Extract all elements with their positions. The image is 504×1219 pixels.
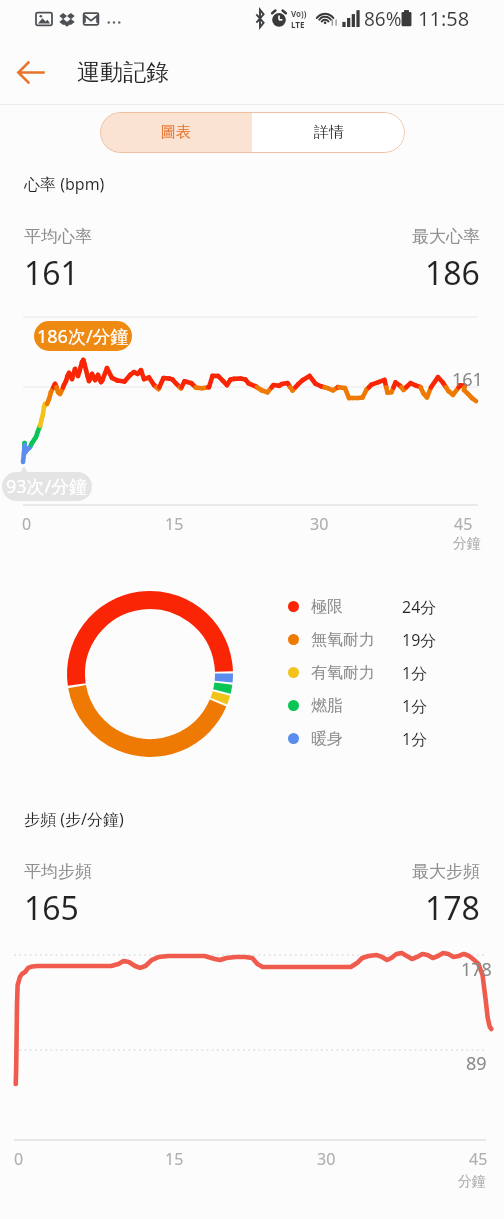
staticText: 燃脂	[311, 696, 402, 716]
staticText: 30	[317, 1148, 336, 1170]
button[interactable]: 燃脂	[288, 689, 488, 722]
staticText: 186次/分鐘	[37, 324, 129, 349]
staticText: 178	[425, 886, 480, 930]
staticText: 無氧耐力	[311, 630, 402, 650]
staticText: 步頻 (步/分鐘)	[24, 808, 124, 830]
staticText: 運動記錄	[77, 58, 169, 87]
button[interactable]: Back	[0, 42, 60, 102]
staticText: 最大步頻	[412, 861, 480, 882]
staticText: 11:58	[418, 5, 470, 32]
staticText: 165	[24, 886, 79, 930]
staticText: 15	[165, 513, 184, 535]
staticText: 極限	[311, 597, 402, 617]
staticText: 161	[452, 367, 483, 392]
staticText: 15	[165, 1148, 184, 1170]
staticText: 45	[454, 513, 473, 535]
staticText: 心率 (bpm)	[24, 173, 105, 195]
button[interactable]: 無氧耐力	[288, 623, 488, 656]
staticText: 有氧耐力	[311, 663, 402, 683]
staticText: 89	[466, 1051, 487, 1076]
staticText: 24分	[402, 596, 437, 618]
staticText: 186	[425, 251, 480, 295]
staticText: 178	[461, 957, 492, 982]
staticText: LTE	[291, 19, 305, 30]
staticText: 0	[22, 513, 32, 535]
staticText: 86%	[364, 6, 402, 32]
staticText: 圖表	[161, 123, 191, 142]
button[interactable]: 圖表	[100, 112, 252, 153]
staticText: 19分	[402, 629, 437, 651]
staticText: 45	[469, 1148, 488, 1170]
staticText: 161	[24, 251, 79, 295]
staticText: 暖身	[311, 729, 402, 749]
staticText: 詳情	[314, 123, 344, 142]
staticText: 分鐘	[458, 1173, 486, 1191]
staticText: 平均步頻	[24, 861, 92, 882]
staticText: 1分	[402, 728, 428, 750]
staticText: 平均心率	[24, 226, 92, 247]
staticText: 最大心率	[412, 226, 480, 247]
button[interactable]: 極限	[288, 590, 488, 623]
staticText: 30	[310, 513, 329, 535]
staticText: Vo))	[291, 8, 307, 19]
button[interactable]: 有氧耐力	[288, 656, 488, 689]
staticText: 1分	[402, 662, 428, 684]
button[interactable]: 詳情	[252, 112, 405, 153]
staticText: 1分	[402, 695, 428, 717]
staticText: 分鐘	[453, 535, 481, 553]
button[interactable]: 暖身	[288, 722, 488, 755]
staticText: 93次/分鐘	[6, 474, 88, 499]
staticText: 0	[14, 1148, 24, 1170]
